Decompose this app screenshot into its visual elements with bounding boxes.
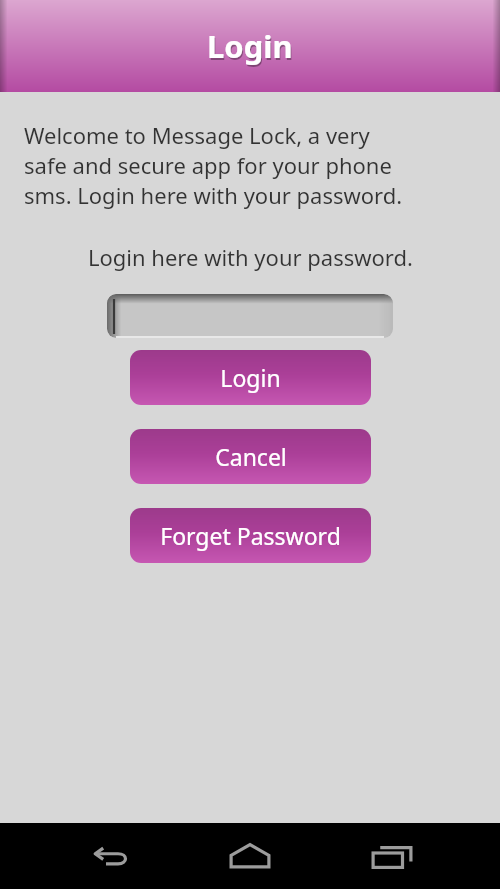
staticText: Login — [207, 25, 293, 67]
button[interactable]: Recent apps — [364, 828, 420, 884]
staticText: Welcome to Message Lock, a very — [24, 120, 370, 150]
staticText: safe and secure app for your phone — [24, 150, 392, 180]
staticText: Login here with your password. — [88, 242, 413, 272]
button[interactable] — [107, 294, 393, 338]
button[interactable]: Home — [220, 826, 280, 886]
staticText: sms. Login here with your password. — [24, 180, 403, 210]
staticText: Login — [208, 27, 294, 69]
button[interactable]: Back — [82, 828, 138, 884]
staticText: Forget Password — [160, 520, 341, 551]
staticText: Login — [220, 362, 281, 393]
staticText: Cancel — [215, 441, 287, 472]
button[interactable]: Cancel — [130, 429, 371, 484]
button[interactable]: Login — [130, 350, 371, 405]
button[interactable]: Forget Password — [130, 508, 371, 563]
